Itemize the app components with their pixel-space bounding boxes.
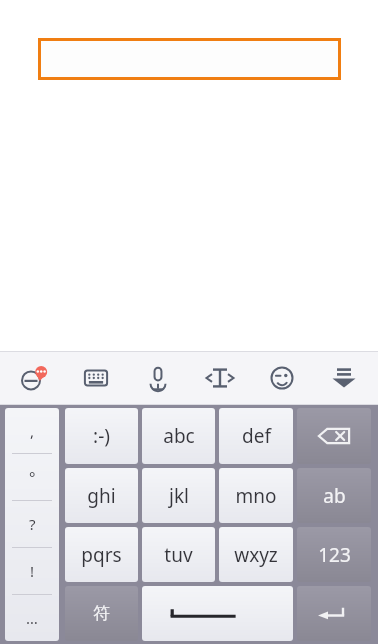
button[interactable]: Input method settings: [6, 352, 62, 404]
staticText: abc: [163, 423, 195, 449]
button[interactable]: ab: [297, 468, 371, 523]
button[interactable]: def: [219, 408, 293, 464]
button[interactable]: wxyz: [219, 527, 293, 582]
button[interactable]: Enter: [297, 586, 371, 641]
button[interactable]: Emoji: [254, 352, 310, 404]
staticText: ,: [30, 421, 35, 441]
button[interactable]: …: [5, 595, 59, 641]
staticText: wxyz: [234, 542, 278, 568]
staticText: jkl: [169, 483, 189, 509]
button[interactable]: jkl: [142, 468, 215, 523]
button[interactable]: Hide keyboard: [316, 352, 372, 404]
button[interactable]: [38, 38, 341, 80]
staticText: ghi: [87, 483, 116, 509]
button[interactable]: ,: [5, 408, 59, 453]
button[interactable]: !: [5, 548, 59, 594]
button[interactable]: Backspace: [297, 408, 371, 464]
button[interactable]: :-): [65, 408, 138, 464]
button[interactable]: mno: [219, 468, 293, 523]
button[interactable]: Space: [142, 586, 293, 641]
button[interactable]: pqrs: [65, 527, 138, 582]
staticText: …: [26, 608, 38, 628]
staticText: tuv: [164, 542, 193, 568]
staticText: ?: [29, 514, 36, 534]
button[interactable]: Voice input: [130, 352, 186, 404]
staticText: °: [29, 467, 36, 487]
staticText: def: [242, 423, 271, 449]
staticText: :-): [93, 423, 110, 449]
button[interactable]: 符: [65, 586, 138, 641]
staticText: mno: [235, 483, 277, 509]
staticText: 符: [93, 603, 110, 624]
button[interactable]: °: [5, 454, 59, 500]
button[interactable]: abc: [142, 408, 215, 464]
button[interactable]: Keyboard layout: [68, 352, 124, 404]
button[interactable]: Move cursor: [192, 352, 248, 404]
button[interactable]: 123: [297, 527, 371, 582]
button[interactable]: ghi: [65, 468, 138, 523]
staticText: !: [30, 561, 35, 581]
button[interactable]: tuv: [142, 527, 215, 582]
staticText: 123: [318, 542, 351, 568]
staticText: pqrs: [81, 542, 122, 568]
button[interactable]: ?: [5, 501, 59, 547]
staticText: ab: [323, 483, 346, 509]
